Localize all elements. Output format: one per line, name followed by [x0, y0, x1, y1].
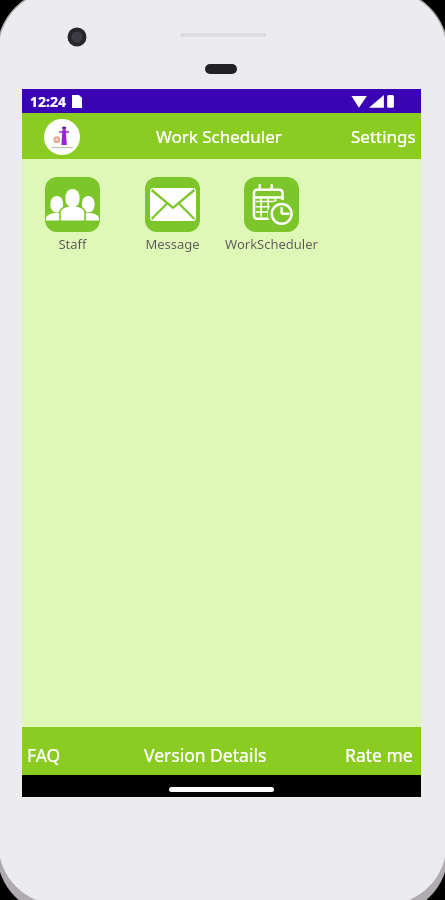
staticText: Work Scheduler — [156, 125, 282, 148]
staticText: Message — [145, 235, 200, 253]
button[interactable]: Message — [122, 177, 222, 250]
button[interactable]: WorkScheduler — [221, 177, 321, 250]
button[interactable]: Settings — [346, 119, 421, 154]
staticText: FAQ — [27, 743, 61, 767]
button[interactable]: Staff — [22, 177, 122, 250]
staticText: Settings — [351, 125, 416, 148]
button[interactable]: FAQ — [22, 727, 155, 775]
button[interactable]: App logo — [44, 119, 80, 155]
staticText: WorkScheduler — [225, 235, 318, 253]
staticText: Version Details — [144, 743, 267, 767]
staticText: Rate me — [345, 743, 413, 767]
staticText: 12:24 — [30, 92, 66, 111]
staticText: Staff — [58, 235, 87, 253]
button[interactable]: Rate me — [288, 727, 421, 775]
button[interactable]: Version Details — [155, 727, 288, 775]
